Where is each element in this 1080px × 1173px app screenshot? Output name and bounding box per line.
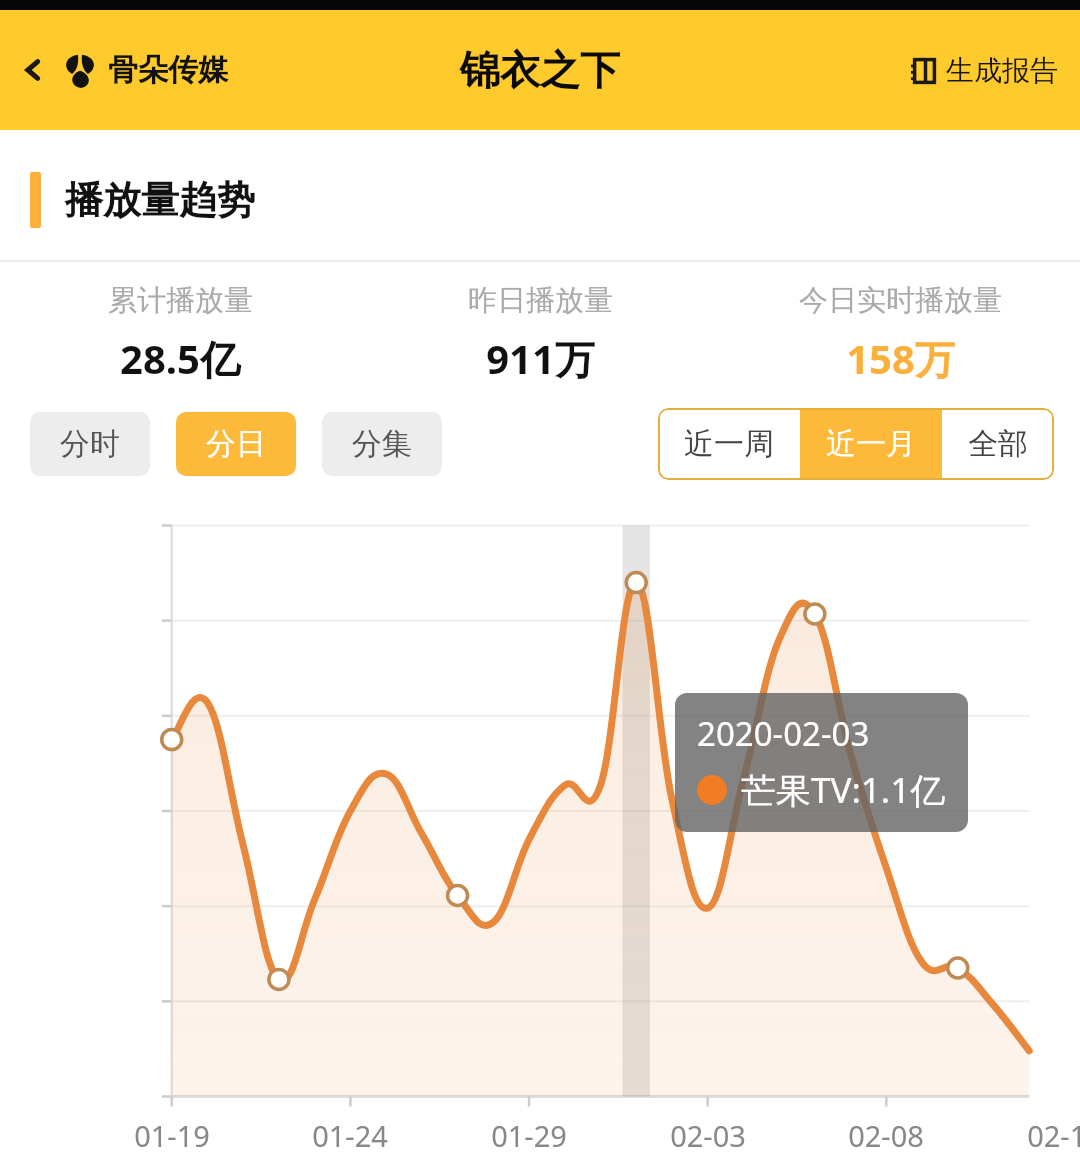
staticText: 01-29 xyxy=(474,1116,584,1155)
staticText: 分时 xyxy=(60,425,120,463)
staticText: 生成报告 xyxy=(946,53,1058,88)
staticText: 近一月 xyxy=(826,425,916,463)
staticText: 01-19 xyxy=(117,1116,227,1155)
button[interactable]: 分日 xyxy=(176,412,296,476)
staticText: 骨朵传媒 xyxy=(108,51,228,89)
button[interactable]: 近一月 xyxy=(800,408,942,480)
button[interactable]: 全部 xyxy=(942,408,1054,480)
staticText: 分日 xyxy=(206,425,266,463)
staticText: 2020-02-03 xyxy=(697,711,870,756)
staticText: 02-08 xyxy=(831,1116,941,1155)
button[interactable]: Back xyxy=(12,44,236,96)
button[interactable]: 今日实时播放量 xyxy=(720,282,1080,386)
staticText: 01-24 xyxy=(295,1116,405,1155)
button[interactable]: 分集 xyxy=(322,412,442,476)
staticText: 播放量趋势 xyxy=(65,176,255,224)
staticText: 02-03 xyxy=(653,1116,763,1155)
staticText: 全部 xyxy=(968,425,1028,463)
staticText: 芒果TV:1.1亿 xyxy=(741,766,946,814)
staticText: 911万 xyxy=(486,331,595,386)
button[interactable]: 累计播放量 xyxy=(0,282,360,386)
staticText: 累计播放量 xyxy=(108,282,253,319)
staticText: 今日实时播放量 xyxy=(799,282,1002,319)
staticText: 158万 xyxy=(846,331,955,386)
button[interactable]: 分时 xyxy=(30,412,150,476)
staticText: 28.5亿 xyxy=(120,331,240,386)
button[interactable]: 近一周 xyxy=(658,408,800,480)
button[interactable]: 昨日播放量 xyxy=(360,282,720,386)
staticText: 锦衣之下 xyxy=(460,45,620,95)
staticText: 02-13 xyxy=(1010,1116,1080,1155)
staticText: 近一周 xyxy=(684,425,774,463)
staticText: 分集 xyxy=(352,425,412,463)
button[interactable]: 生成报告 xyxy=(902,45,1064,96)
staticText: 昨日播放量 xyxy=(468,282,613,319)
